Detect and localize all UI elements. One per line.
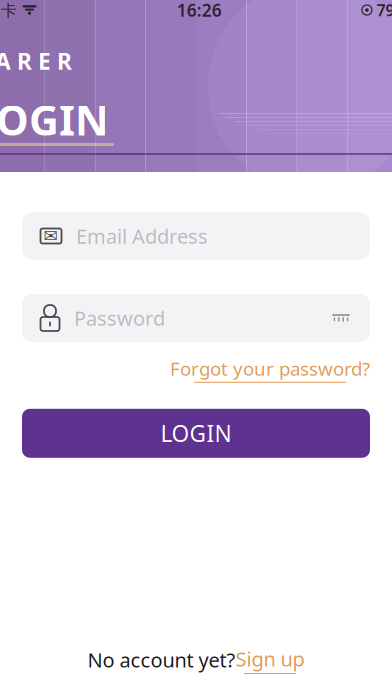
staticText: ✉: [43, 226, 58, 246]
staticText: C A R E R: [0, 46, 72, 76]
staticText: 79%: [376, 0, 392, 21]
staticText: Email Address: [76, 223, 208, 249]
staticText: LOGIN: [0, 92, 109, 147]
staticText: 无SIM卡: [0, 0, 17, 21]
button[interactable]: LOGIN: [22, 409, 370, 458]
staticText: Password: [74, 305, 165, 331]
button[interactable]: Password: [22, 294, 370, 342]
staticText: No account yet?: [87, 646, 235, 673]
button[interactable]: ✉: [22, 212, 370, 260]
staticText: 16:26: [177, 0, 222, 21]
button[interactable]: Forgot your password?: [170, 352, 370, 387]
staticText: Sign up: [235, 645, 304, 672]
staticText: Forgot your password?: [170, 356, 370, 381]
staticText: LOGIN: [160, 418, 231, 448]
button[interactable]: Sign up: [235, 645, 304, 674]
